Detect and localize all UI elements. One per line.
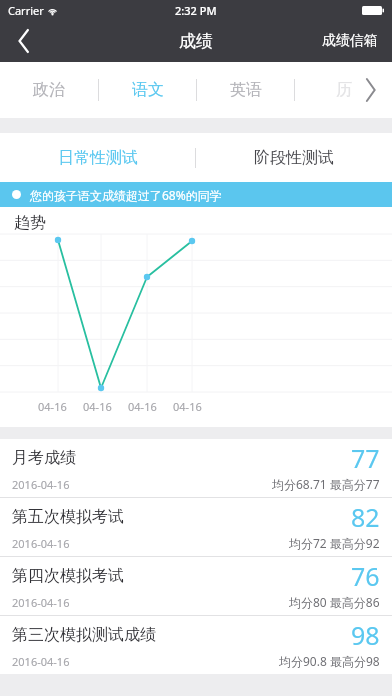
staticText: Carrier xyxy=(8,3,44,18)
staticText: 82 xyxy=(351,500,380,534)
button[interactable]: 英语 xyxy=(197,62,294,118)
button[interactable]: 政治 xyxy=(0,62,98,118)
staticText: 成绩 xyxy=(179,31,213,52)
staticText: 04-16 xyxy=(173,399,218,414)
staticText: 日常性测试 xyxy=(58,148,138,168)
button[interactable]: 月考成绩 xyxy=(0,439,392,497)
button[interactable]: 第三次模拟测试成绩 xyxy=(0,616,392,674)
staticText: 英语 xyxy=(230,80,262,100)
staticText: 04-16 xyxy=(38,399,83,414)
staticText: 2016-04-16 xyxy=(12,536,70,551)
button[interactable]: 阶段性测试 xyxy=(196,133,392,182)
button[interactable]: Back xyxy=(0,20,48,62)
button[interactable]: 语文 xyxy=(99,62,196,118)
staticText: 第五次模拟考试 xyxy=(12,507,124,527)
staticText: 均分80 最高分86 xyxy=(289,594,380,610)
button[interactable]: More subjects xyxy=(348,62,392,118)
staticText: 98 xyxy=(351,618,380,652)
staticText: 您的孩子语文成绩超过了68%的同学 xyxy=(30,187,222,203)
staticText: 2016-04-16 xyxy=(12,595,70,610)
staticText: 第三次模拟测试成绩 xyxy=(12,625,156,645)
staticText: 成绩信箱 xyxy=(322,32,378,50)
staticText: 2016-04-16 xyxy=(12,477,70,492)
staticText: 均分90.8 最高分98 xyxy=(279,653,380,669)
staticText: 历 xyxy=(336,80,352,100)
staticText: 第四次模拟考试 xyxy=(12,566,124,586)
button[interactable]: 您的孩子语文成绩超过了68%的同学 xyxy=(0,182,392,207)
staticText: 阶段性测试 xyxy=(254,148,334,168)
staticText: 语文 xyxy=(132,80,164,100)
staticText: 76 xyxy=(351,559,380,593)
staticText: 月考成绩 xyxy=(12,448,76,468)
button[interactable]: 第四次模拟考试 xyxy=(0,557,392,615)
staticText: 均分68.71 最高分77 xyxy=(272,476,380,492)
staticText: 趋势 xyxy=(14,213,46,233)
button[interactable]: 历 xyxy=(295,62,392,118)
staticText: 2:32 PM xyxy=(175,3,217,18)
staticText: 77 xyxy=(351,441,380,475)
button[interactable]: 成绩信箱 xyxy=(308,22,392,60)
button[interactable]: 日常性测试 xyxy=(0,133,195,182)
staticText: 2016-04-16 xyxy=(12,654,70,669)
staticText: 均分72 最高分92 xyxy=(289,535,380,551)
staticText: 政治 xyxy=(33,80,65,100)
staticText: 04-16 xyxy=(128,399,173,414)
staticText: 04-16 xyxy=(83,399,128,414)
button[interactable]: 第五次模拟考试 xyxy=(0,498,392,556)
